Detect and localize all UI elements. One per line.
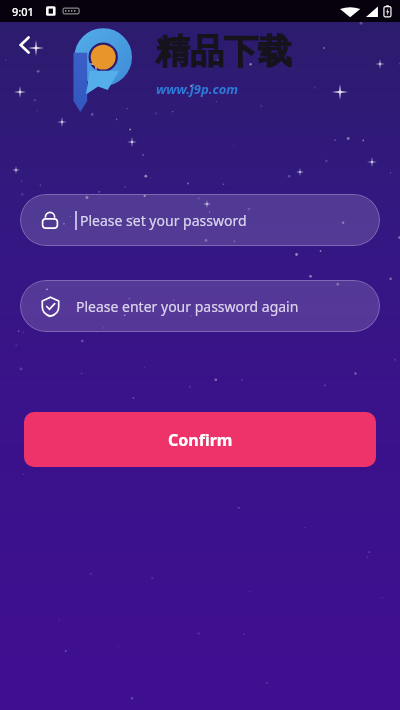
button[interactable]: Please set your password <box>20 194 380 246</box>
button[interactable]: Back <box>4 24 46 66</box>
staticText: 精品下载 <box>156 30 292 73</box>
button[interactable]: Confirm <box>24 412 376 467</box>
staticText: Confirm <box>168 429 233 451</box>
staticText: Please enter your password again <box>76 297 299 316</box>
staticText: 9:01 <box>12 4 34 19</box>
button[interactable]: Please enter your password again <box>20 280 380 332</box>
staticText: Please set your password <box>80 211 247 230</box>
staticText: www.j9p.com <box>156 80 239 98</box>
